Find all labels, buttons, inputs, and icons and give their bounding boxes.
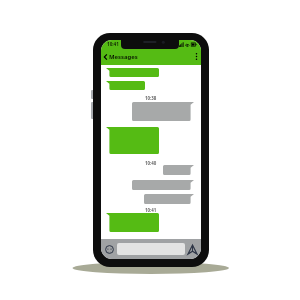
- button[interactable]: Messages: [104, 53, 138, 61]
- button[interactable]: [106, 127, 159, 154]
- staticText: 10:40: [145, 160, 157, 166]
- button[interactable]: Emoji: [105, 245, 114, 254]
- button[interactable]: [106, 213, 159, 232]
- button[interactable]: [132, 102, 194, 121]
- button[interactable]: Volume: [91, 102, 94, 119]
- button[interactable]: [106, 81, 145, 90]
- staticText: 10:38: [145, 95, 157, 101]
- button[interactable]: [163, 165, 194, 175]
- button[interactable]: Mute switch: [91, 90, 94, 99]
- staticText: 10:41: [107, 41, 119, 47]
- staticText: Messages: [109, 53, 138, 61]
- button[interactable]: [106, 68, 159, 77]
- button[interactable]: [117, 243, 185, 255]
- button[interactable]: Send: [188, 245, 197, 254]
- button[interactable]: [132, 180, 194, 190]
- button[interactable]: More options: [195, 53, 198, 60]
- staticText: 10:41: [145, 207, 157, 213]
- button[interactable]: [144, 194, 194, 204]
